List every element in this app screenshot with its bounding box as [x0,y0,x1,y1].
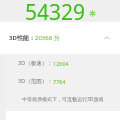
staticText: 3D（极速）： [18,59,53,67]
staticText: 54329 [25,0,86,20]
staticText: 12604 [53,60,69,67]
button[interactable]: 3D（范围）： [6,72,120,90]
button[interactable]: 3D（极速）： [6,54,120,72]
other: 收起 [102,33,112,43]
staticText: 3D（范围）： [18,77,53,85]
staticText: 3D性能： [9,34,35,42]
staticText: 7764 [53,78,66,85]
button[interactable]: 3D性能： [0,22,120,54]
staticText: 中等画质模式下，可流畅运行3D游戏 [22,96,104,103]
staticText: 20368 分 [35,34,60,42]
